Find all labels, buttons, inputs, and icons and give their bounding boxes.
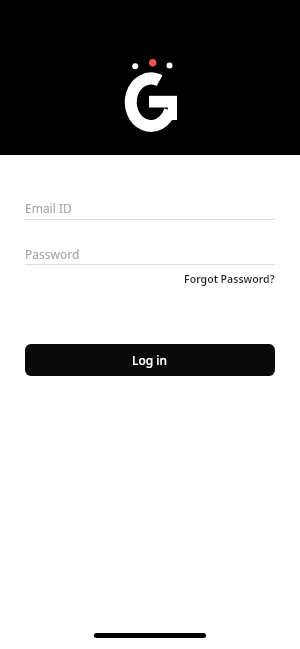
staticText: Forgot Password? <box>184 272 275 286</box>
button[interactable]: Password <box>25 242 275 266</box>
staticText: Password <box>25 246 80 262</box>
button[interactable]: Log in <box>25 344 275 376</box>
staticText: Email ID <box>25 200 72 216</box>
button[interactable]: Forgot Password? <box>184 272 275 286</box>
button[interactable]: Email ID <box>25 196 275 220</box>
staticText: Log in <box>132 352 168 368</box>
